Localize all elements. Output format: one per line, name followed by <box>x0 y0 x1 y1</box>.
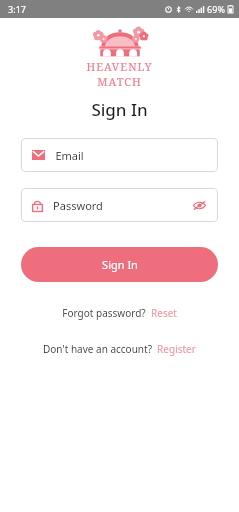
staticText: HEAVENLY <box>86 59 153 74</box>
staticText: MATCH <box>97 74 142 89</box>
button[interactable]: Sign In <box>21 247 218 282</box>
staticText: 3:17 <box>8 3 26 15</box>
staticText: Sign In <box>91 98 148 121</box>
button[interactable]: Show password <box>191 197 207 213</box>
staticText: Don't have an account? <box>43 342 152 356</box>
staticText: Reset <box>151 306 177 320</box>
button[interactable]: Register <box>157 342 196 356</box>
staticText: Email <box>55 148 84 163</box>
button[interactable]: Password <box>21 188 218 222</box>
staticText: Forgot password? <box>62 306 146 320</box>
button[interactable]: Reset <box>151 306 177 320</box>
staticText: 69% <box>207 3 225 15</box>
staticText: Register <box>157 342 196 356</box>
button[interactable]: Email <box>21 138 218 172</box>
staticText: Password <box>53 198 103 213</box>
staticText: Sign In <box>102 257 138 272</box>
